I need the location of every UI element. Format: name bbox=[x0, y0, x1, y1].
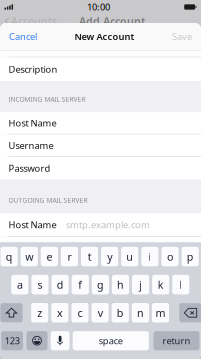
button[interactable]: Description bbox=[0, 57, 201, 81]
button[interactable]: Accounts bbox=[0, 14, 57, 28]
staticText: o bbox=[167, 249, 173, 264]
staticText: d bbox=[57, 278, 64, 292]
button[interactable]: p bbox=[182, 247, 199, 266]
button[interactable]: t bbox=[81, 247, 98, 266]
staticText: 123 bbox=[5, 334, 20, 347]
button[interactable]: n bbox=[132, 303, 149, 322]
staticText: i bbox=[148, 249, 151, 264]
button[interactable]: m bbox=[152, 303, 169, 322]
button[interactable]: Dictate bbox=[51, 331, 69, 350]
button[interactable]: l bbox=[172, 275, 190, 294]
staticText: Username bbox=[9, 139, 54, 152]
button[interactable]: Save bbox=[172, 23, 201, 50]
button[interactable]: Emoji bbox=[26, 331, 47, 350]
staticText: u bbox=[126, 249, 133, 264]
button[interactable]: k bbox=[152, 275, 169, 294]
button[interactable]: Delete bbox=[179, 303, 201, 322]
staticText: a bbox=[17, 278, 23, 292]
staticText: Description bbox=[9, 63, 58, 75]
button[interactable]: o bbox=[161, 247, 179, 266]
staticText: j bbox=[139, 278, 142, 292]
button[interactable]: v bbox=[91, 303, 109, 322]
button[interactable]: r bbox=[61, 247, 78, 266]
staticText: l bbox=[179, 278, 182, 292]
button[interactable]: return bbox=[153, 331, 199, 350]
staticText: v bbox=[98, 306, 103, 320]
staticText: q bbox=[6, 249, 13, 264]
button[interactable]: z bbox=[31, 303, 48, 322]
button[interactable]: y bbox=[101, 247, 118, 266]
button[interactable]: d bbox=[51, 275, 69, 294]
button[interactable]: g bbox=[92, 275, 109, 294]
staticText: 10:00 bbox=[87, 1, 110, 13]
staticText: y bbox=[107, 249, 112, 264]
staticText: r bbox=[67, 249, 71, 264]
staticText: OUTGOING MAIL SERVER bbox=[9, 196, 88, 204]
button[interactable]: c bbox=[71, 303, 89, 322]
button[interactable]: w bbox=[21, 247, 38, 266]
button[interactable]: f bbox=[72, 275, 89, 294]
staticText: m bbox=[156, 306, 166, 320]
staticText: New Account bbox=[74, 30, 134, 43]
button[interactable]: space bbox=[73, 331, 149, 350]
button[interactable]: Host Name bbox=[0, 213, 201, 236]
staticText: s bbox=[38, 278, 43, 292]
staticText: e bbox=[46, 249, 52, 264]
button[interactable]: u bbox=[121, 247, 138, 266]
staticText: Host Name bbox=[9, 219, 57, 231]
button[interactable]: e bbox=[41, 247, 58, 266]
button[interactable]: q bbox=[0, 247, 18, 266]
staticText: space bbox=[99, 334, 123, 347]
staticText: n bbox=[137, 306, 144, 320]
staticText: z bbox=[37, 306, 42, 320]
button[interactable]: Password bbox=[0, 157, 201, 179]
staticText: return bbox=[162, 334, 190, 347]
staticText: Cancel bbox=[9, 30, 37, 43]
button[interactable]: b bbox=[112, 303, 129, 322]
button[interactable]: Username bbox=[0, 134, 201, 156]
staticText: t bbox=[88, 249, 92, 264]
staticText: Accounts bbox=[11, 14, 57, 28]
staticText: INCOMING MAIL SERVER bbox=[9, 95, 86, 103]
button[interactable]: Shift bbox=[0, 303, 23, 322]
button[interactable]: j bbox=[132, 275, 149, 294]
staticText: b bbox=[117, 306, 124, 320]
staticText: x bbox=[57, 306, 63, 320]
staticText: h bbox=[117, 278, 124, 292]
staticText: Add Account bbox=[79, 14, 145, 28]
button[interactable]: h bbox=[112, 275, 129, 294]
button[interactable]: Cancel bbox=[0, 23, 37, 50]
staticText: w bbox=[25, 249, 33, 264]
button[interactable]: a bbox=[11, 275, 29, 294]
staticText: c bbox=[78, 306, 83, 320]
staticText: f bbox=[78, 278, 82, 292]
button[interactable]: i bbox=[141, 247, 159, 266]
staticText: p bbox=[187, 249, 194, 264]
staticText: Password bbox=[9, 162, 51, 174]
button[interactable]: s bbox=[31, 275, 49, 294]
staticText: Save bbox=[172, 30, 192, 43]
staticText: smtp.example.com bbox=[66, 219, 150, 231]
button[interactable]: 123 bbox=[1, 331, 23, 350]
button[interactable]: x bbox=[51, 303, 69, 322]
staticText: Host Name bbox=[9, 117, 57, 129]
staticText: k bbox=[158, 278, 164, 292]
staticText: g bbox=[97, 278, 104, 292]
button[interactable]: Host Name bbox=[0, 112, 201, 134]
